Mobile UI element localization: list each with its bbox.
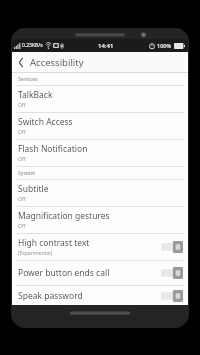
staticText: Power button ends call: [18, 267, 110, 279]
staticText: Off: [18, 223, 26, 230]
button[interactable]: Speak password: [12, 286, 188, 305]
staticText: High contrast text: [18, 237, 90, 249]
button[interactable]: Toggle High contrast text: [161, 241, 183, 253]
staticText: Subtitle: [18, 183, 49, 195]
button[interactable]: Toggle Speak password: [161, 290, 183, 302]
button[interactable]: Subtitle: [12, 180, 188, 206]
staticText: Magnification gestures: [18, 210, 110, 222]
staticText: TalkBack: [18, 89, 53, 101]
button[interactable]: TalkBack: [12, 86, 188, 112]
button[interactable]: Flash Notification: [12, 140, 188, 166]
button[interactable]: Navigate up: [12, 53, 30, 71]
staticText: Accessibility: [30, 56, 84, 69]
button[interactable]: Switch Access: [12, 113, 188, 139]
staticText: Services: [18, 76, 38, 83]
button[interactable]: Power button ends call: [12, 261, 188, 285]
staticText: 14:41: [98, 42, 114, 50]
staticText: Switch Access: [18, 116, 73, 128]
button[interactable]: Magnification gestures: [12, 207, 188, 233]
staticText: (Experimental): [18, 250, 53, 257]
staticText: Off: [18, 102, 26, 109]
button[interactable]: Toggle Power button ends call: [161, 267, 183, 279]
staticText: 0.23KB/s: [22, 42, 43, 49]
staticText: 100%: [157, 42, 172, 49]
staticText: Flash Notification: [18, 143, 88, 155]
staticText: System: [18, 170, 36, 177]
staticText: Off: [18, 196, 26, 203]
button[interactable]: High contrast text: [12, 234, 188, 260]
staticText: Off: [18, 156, 26, 163]
staticText: Off: [18, 129, 26, 136]
staticText: Speak password: [18, 290, 83, 302]
